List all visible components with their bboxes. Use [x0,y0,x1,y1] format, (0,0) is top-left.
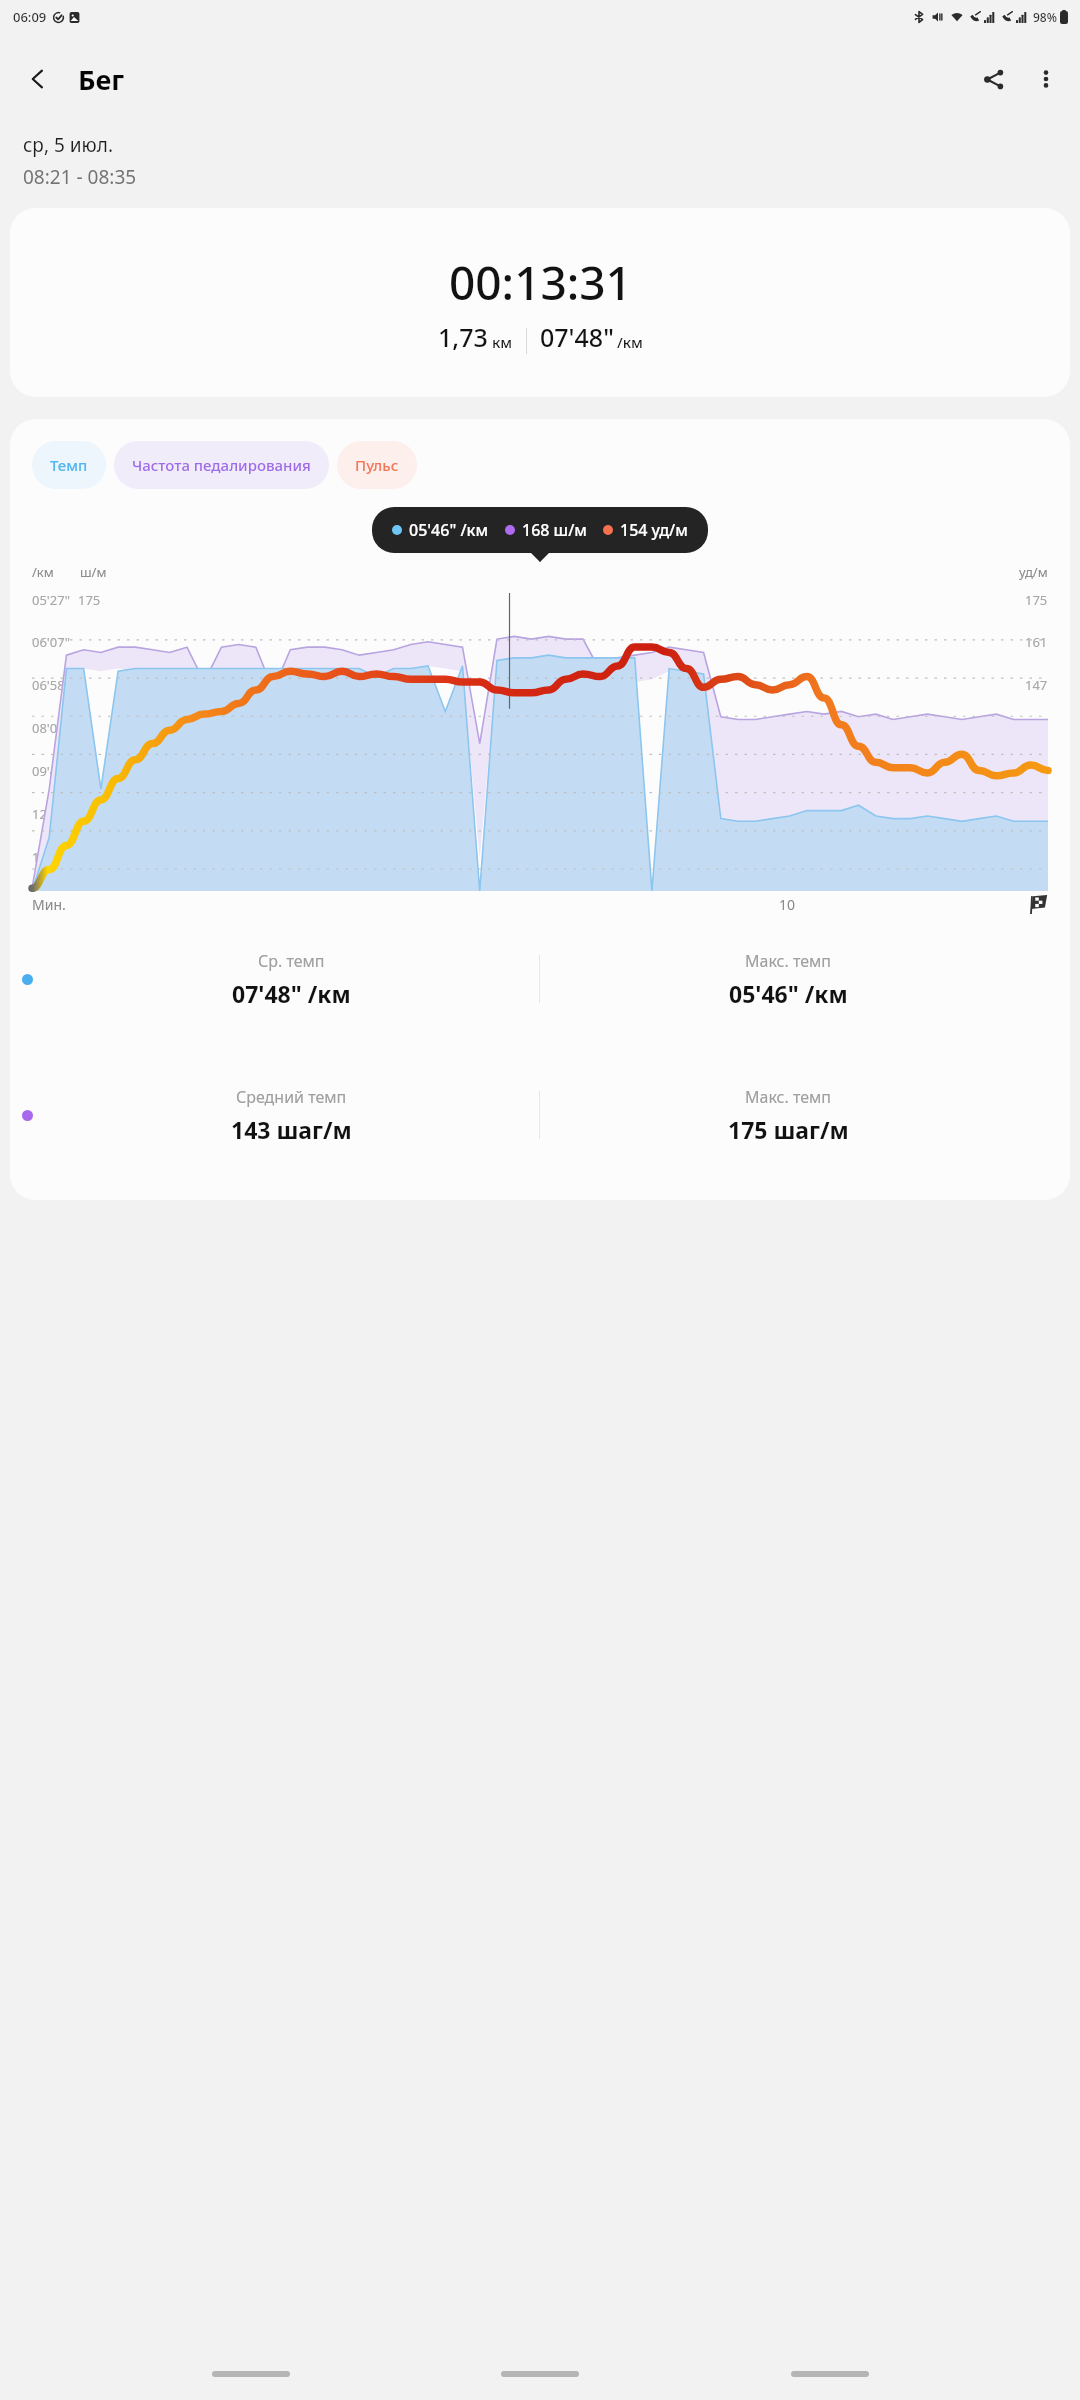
staticText: ш/м [80,563,107,581]
button[interactable]: Темп [32,441,106,489]
staticText: 15'47" [32,848,70,866]
staticText: 06:09 [13,8,47,26]
staticText: 175 шаг/м [728,1114,849,1145]
staticText: 06'58" [32,676,70,694]
button[interactable]: Navigation [791,2371,869,2377]
staticText: Частота педалирования [132,455,311,475]
button[interactable]: Navigation [212,2371,290,2377]
button[interactable]: 00:13:31 [10,208,1070,397]
staticText: 175 [1025,591,1048,609]
staticText: уд/м [1019,563,1048,581]
button[interactable]: Ср. темп [10,940,1070,1018]
staticText: 105 [1025,805,1048,823]
staticText: 10 [779,895,796,914]
staticText: 07'48" /км [232,978,351,1009]
staticText: Макс. темп [745,1086,832,1108]
button[interactable]: More options [1020,53,1072,105]
button[interactable]: Navigation [501,2371,579,2377]
staticText: 133 [1025,719,1048,737]
staticText: /км [617,332,643,352]
staticText: Пульс [355,455,399,475]
staticText: Ср. темп [258,950,325,972]
staticText: 00:13:31 [449,251,632,314]
staticText: 119 [1025,762,1048,780]
button[interactable]: Пульс [337,441,417,489]
staticText: 05'27" [32,591,70,609]
staticText: 07'48" [540,320,614,354]
staticText: 05'46" /км [729,978,848,1009]
staticText: 168 ш/м [522,519,587,541]
staticText: 154 уд/м [620,519,688,541]
staticText: 12'00" [32,805,70,823]
staticText: Средний темп [236,1086,347,1108]
staticText: 161 [1025,633,1048,651]
staticText: ср, 5 июл. [23,132,113,158]
staticText: 08'06" [32,719,70,737]
staticText: 98% [1033,9,1057,25]
staticText: Макс. темп [745,950,832,972]
staticText: 09'40" [32,762,70,780]
staticText: км [492,332,513,352]
staticText: 1,73 [438,320,488,354]
button[interactable]: Back [10,51,66,107]
button[interactable]: Частота педалирования [114,441,329,489]
staticText: Мин. [32,895,66,914]
staticText: 06'07" [32,633,70,651]
staticText: 143 шаг/м [231,1114,352,1145]
staticText: 147 [1025,676,1048,694]
staticText: /км [32,563,54,581]
button[interactable]: Share [968,53,1020,105]
staticText: 175 [78,591,101,609]
staticText: Темп [50,455,88,475]
staticText: 08:21 - 08:35 [23,164,137,190]
staticText: Бег [78,61,125,98]
button[interactable]: Средний темп [10,1076,1070,1154]
staticText: 05'46" /км [409,519,489,541]
